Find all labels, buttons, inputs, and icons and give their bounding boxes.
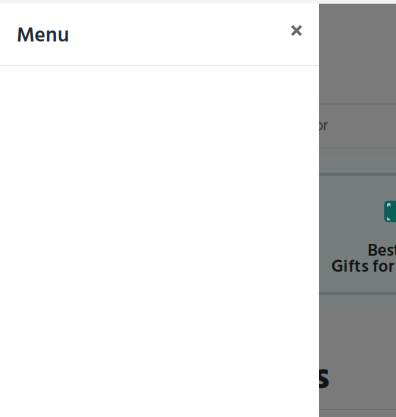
staticText: or <box>315 115 328 138</box>
button[interactable]: Close menu <box>274 8 318 52</box>
staticText: Gifts for <box>331 253 394 281</box>
staticText: Menu <box>16 20 69 53</box>
staticText: Best <box>367 237 396 265</box>
staticText: s <box>313 349 329 409</box>
